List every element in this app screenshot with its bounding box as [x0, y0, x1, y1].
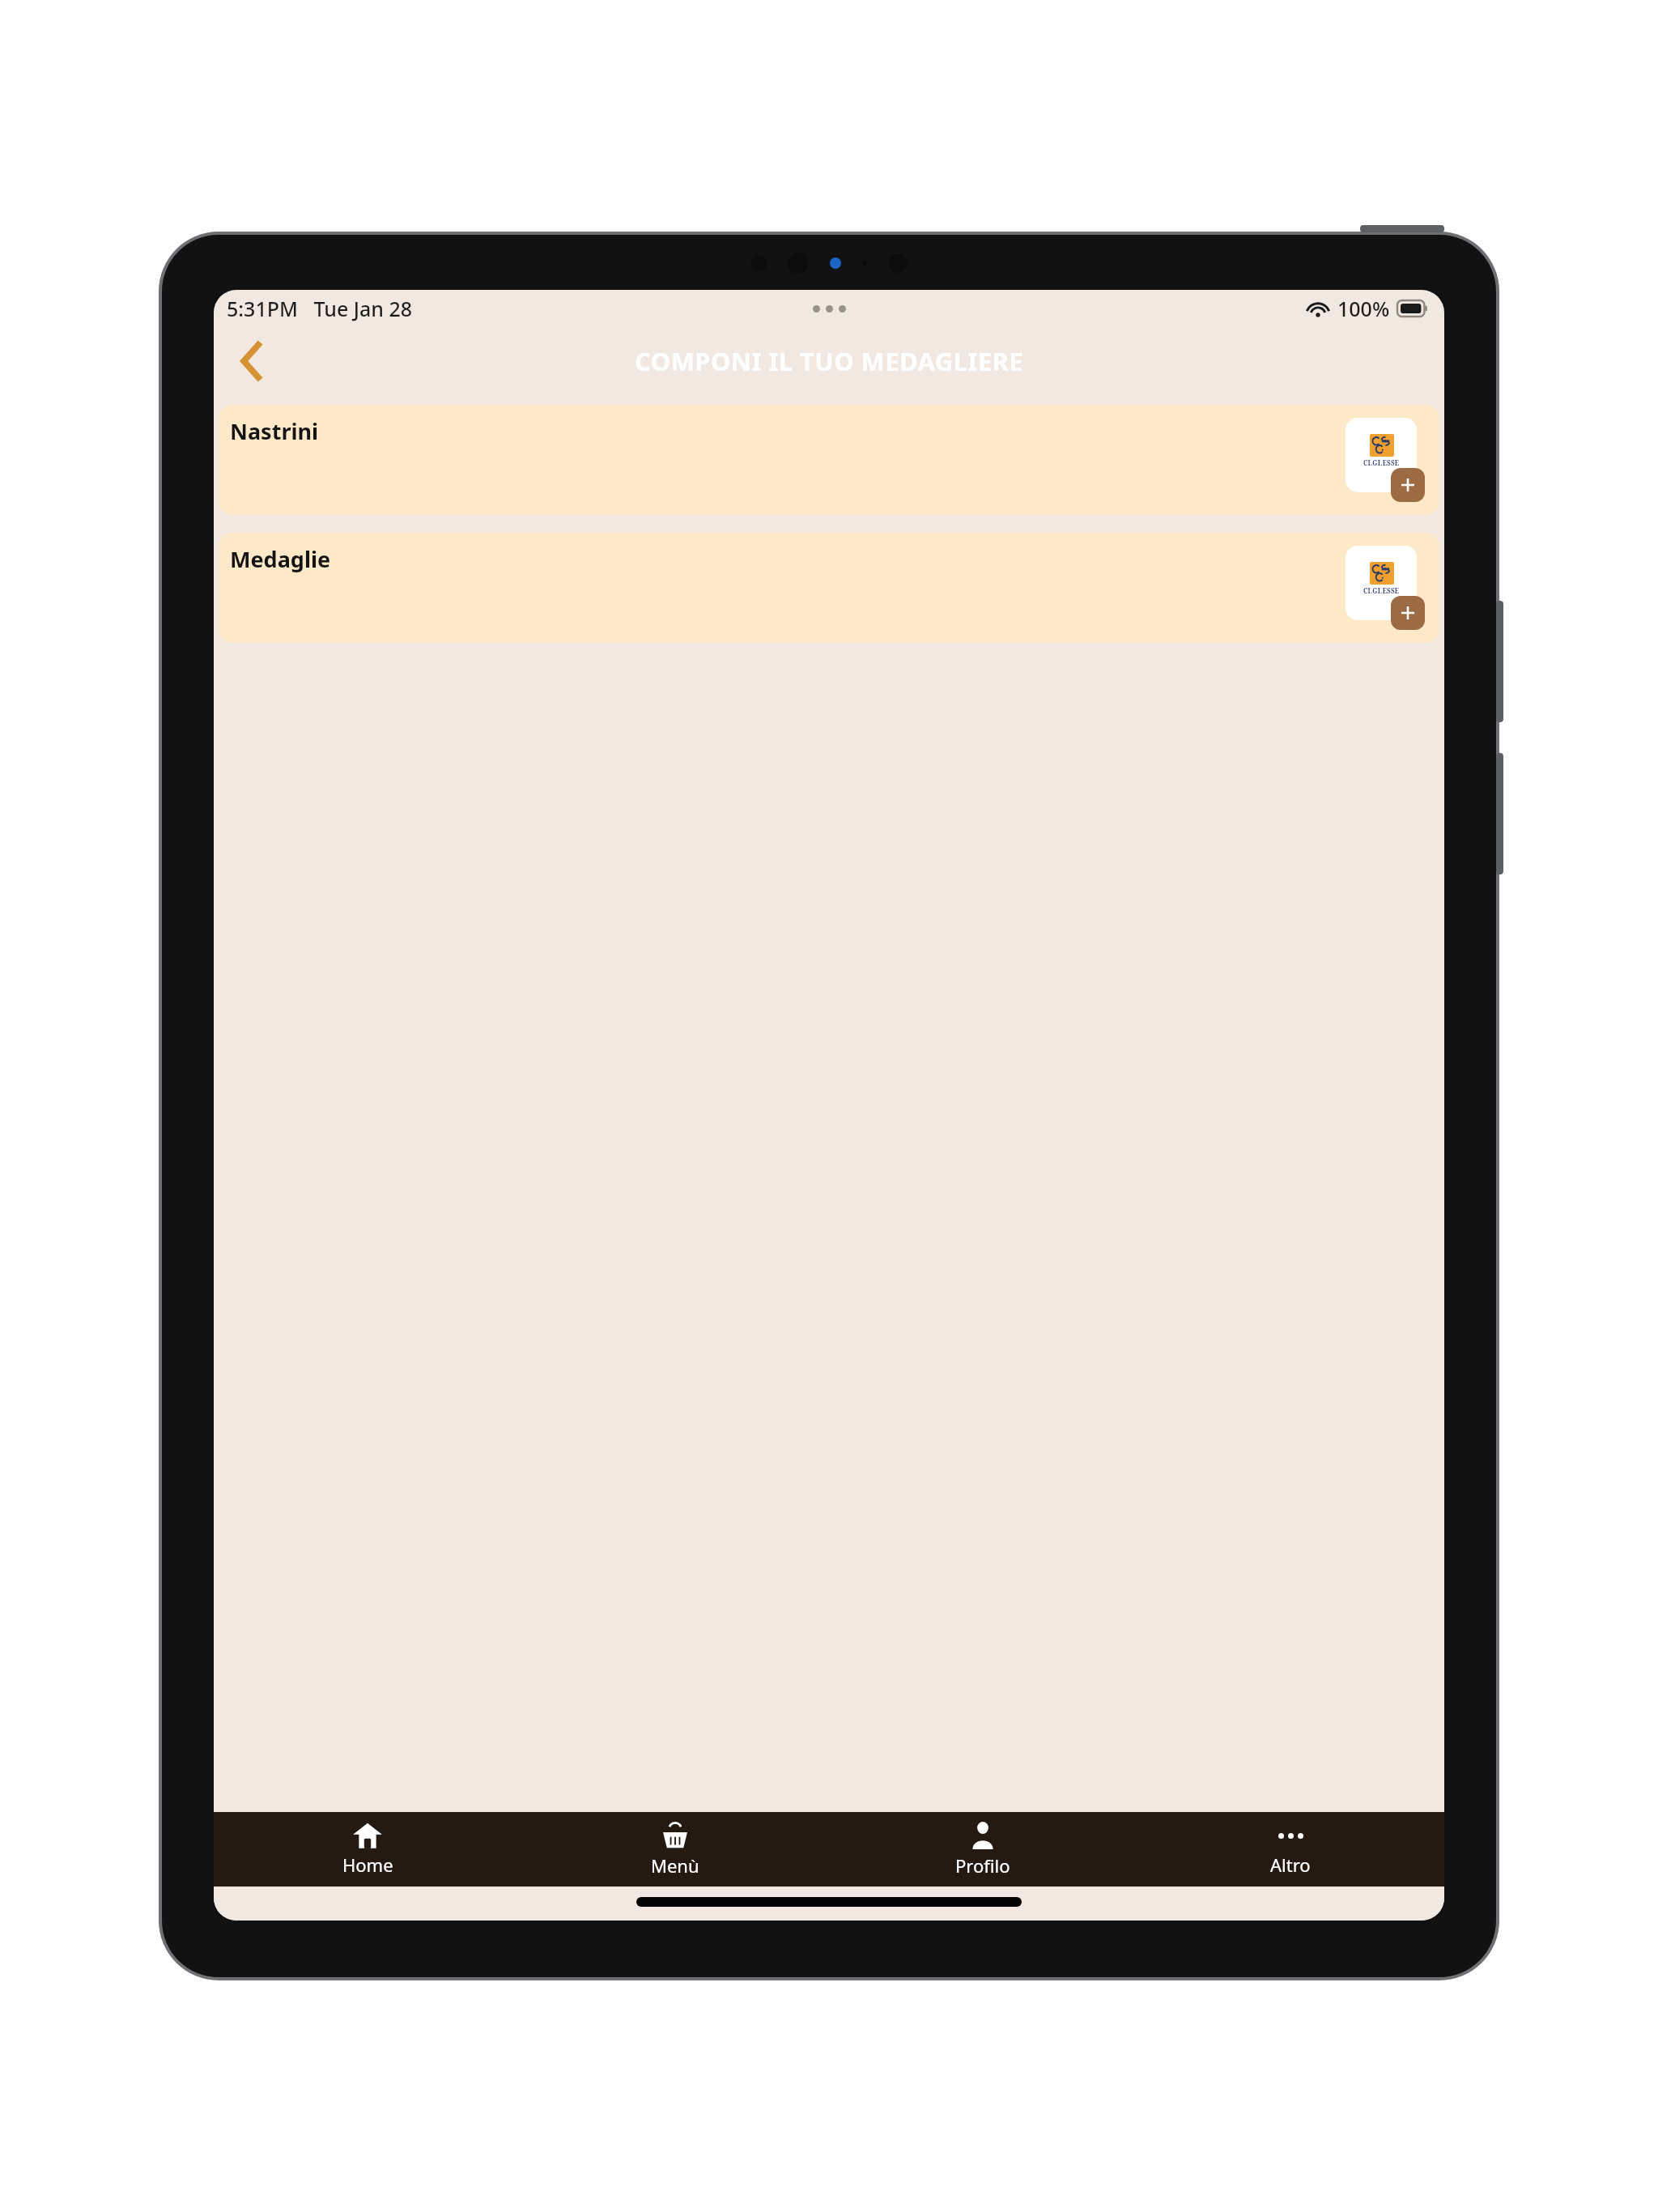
button[interactable]: Menù — [521, 1812, 829, 1887]
staticText: Home — [342, 1853, 393, 1877]
staticText: 100% — [1337, 295, 1390, 322]
button[interactable]: Medaglie — [219, 533, 1439, 643]
button[interactable]: Altro — [1137, 1812, 1444, 1887]
staticText: Profilo — [955, 1853, 1010, 1878]
button[interactable]: Nastrini — [219, 405, 1439, 515]
button[interactable]: Home — [214, 1812, 521, 1887]
staticText: CI.GI.ESSE — [1363, 586, 1400, 595]
button[interactable]: Profilo — [829, 1812, 1137, 1887]
staticText: COMPONI IL TUO MEDAGLIERE — [635, 344, 1023, 378]
staticText: Medaglie — [230, 544, 331, 574]
button[interactable]: CI.GI.ESSE item — [1346, 546, 1417, 620]
staticText: Menù — [651, 1853, 699, 1878]
button[interactable]: Add — [1391, 596, 1425, 630]
staticText: CI.GI.ESSE — [1363, 458, 1400, 467]
button[interactable]: CI.GI.ESSE item — [1346, 418, 1417, 492]
staticText: Nastrini — [230, 416, 319, 446]
button[interactable]: Add — [1391, 468, 1425, 502]
staticText: Altro — [1270, 1853, 1311, 1877]
staticText: 5:31PM Tue Jan 28 — [227, 295, 413, 322]
button[interactable]: Back — [222, 330, 283, 392]
